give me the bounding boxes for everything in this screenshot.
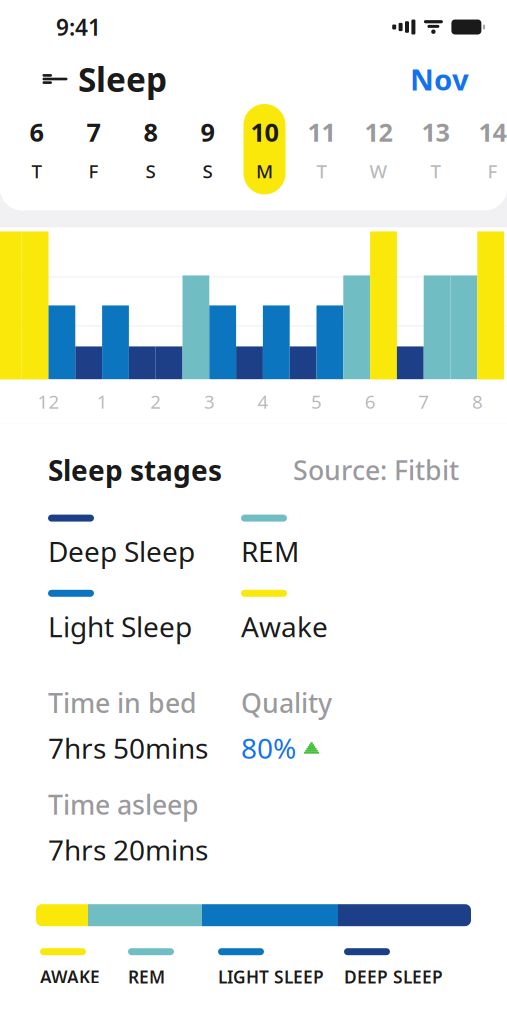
staticText: LIGHT SLEEP (218, 965, 324, 988)
staticText: 14 (478, 115, 506, 149)
button[interactable]: Back (32, 56, 78, 102)
staticText: 7hrs 20mins (48, 831, 208, 868)
button[interactable]: 11 (293, 104, 350, 194)
staticText: 7 (86, 115, 100, 149)
staticText: F (88, 159, 98, 183)
staticText: 2 (150, 389, 161, 414)
staticText: AWAKE (40, 965, 100, 988)
staticText: Time asleep (48, 787, 199, 822)
button[interactable]: 14 (464, 104, 507, 194)
staticText: T (31, 159, 41, 183)
staticText: S (202, 159, 212, 183)
staticText: 5 (311, 389, 322, 414)
button[interactable]: 10 (236, 104, 293, 194)
staticText: Source: Fitbit (293, 452, 459, 488)
staticText: REM (241, 533, 299, 570)
staticText: 10 (250, 115, 278, 149)
staticText: 7hrs 50mins (48, 729, 208, 767)
button[interactable]: 8 (122, 104, 179, 194)
staticText: Light Sleep (48, 608, 192, 645)
button[interactable]: 13 (407, 104, 464, 194)
staticText: 9 (200, 115, 214, 149)
staticText: Nov (410, 59, 469, 98)
staticText: M (256, 159, 273, 183)
staticText: 1 (97, 389, 108, 414)
staticText: F (487, 159, 497, 183)
staticText: Sleep (78, 57, 167, 101)
button[interactable]: 9 (179, 104, 236, 194)
staticText: Sleep stages (48, 451, 222, 489)
staticText: 13 (421, 115, 449, 149)
staticText: 7 (418, 389, 429, 414)
staticText: 6 (29, 115, 43, 149)
staticText: 11 (307, 115, 335, 149)
staticText: Deep Sleep (48, 533, 195, 570)
button[interactable]: 6 (8, 104, 65, 194)
staticText: T (430, 159, 440, 183)
button[interactable]: Nov (400, 51, 479, 106)
button[interactable]: 7 (65, 104, 122, 194)
staticText: Awake (241, 608, 328, 645)
staticText: 8 (472, 389, 483, 414)
staticText: 3 (204, 389, 215, 414)
staticText: 80% (241, 729, 296, 767)
staticText: W (369, 159, 387, 183)
button[interactable]: 12 (350, 104, 407, 194)
staticText: 12 (38, 389, 60, 414)
staticText: T (316, 159, 326, 183)
staticText: REM (128, 965, 165, 988)
staticText: Time in bed (48, 685, 197, 720)
staticText: Quality (241, 685, 332, 720)
staticText: 4 (257, 389, 268, 414)
staticText: DEEP SLEEP (344, 965, 443, 988)
staticText: 8 (143, 115, 157, 149)
staticText: 9:41 (56, 12, 101, 42)
staticText: S (145, 159, 155, 183)
staticText: 6 (365, 389, 376, 414)
staticText: 12 (364, 115, 392, 149)
